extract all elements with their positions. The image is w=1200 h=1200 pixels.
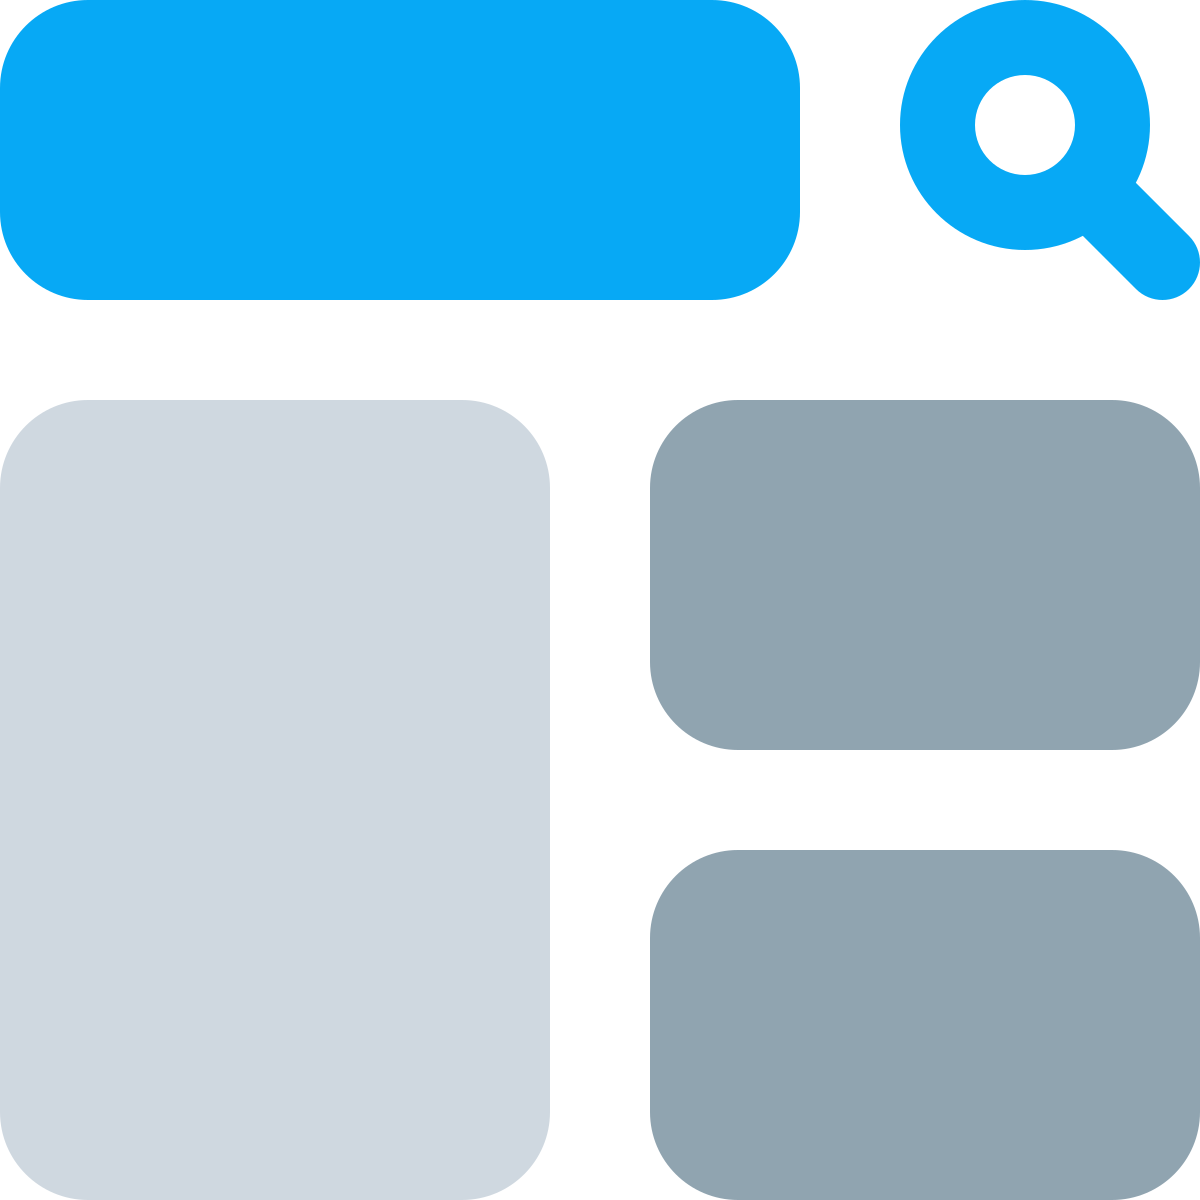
button[interactable]: Search field <box>0 0 800 300</box>
button[interactable]: Featured result <box>0 400 550 1200</box>
button[interactable]: Search <box>900 0 1200 300</box>
button[interactable]: Result two <box>650 850 1200 1200</box>
button[interactable]: Result one <box>650 400 1200 750</box>
